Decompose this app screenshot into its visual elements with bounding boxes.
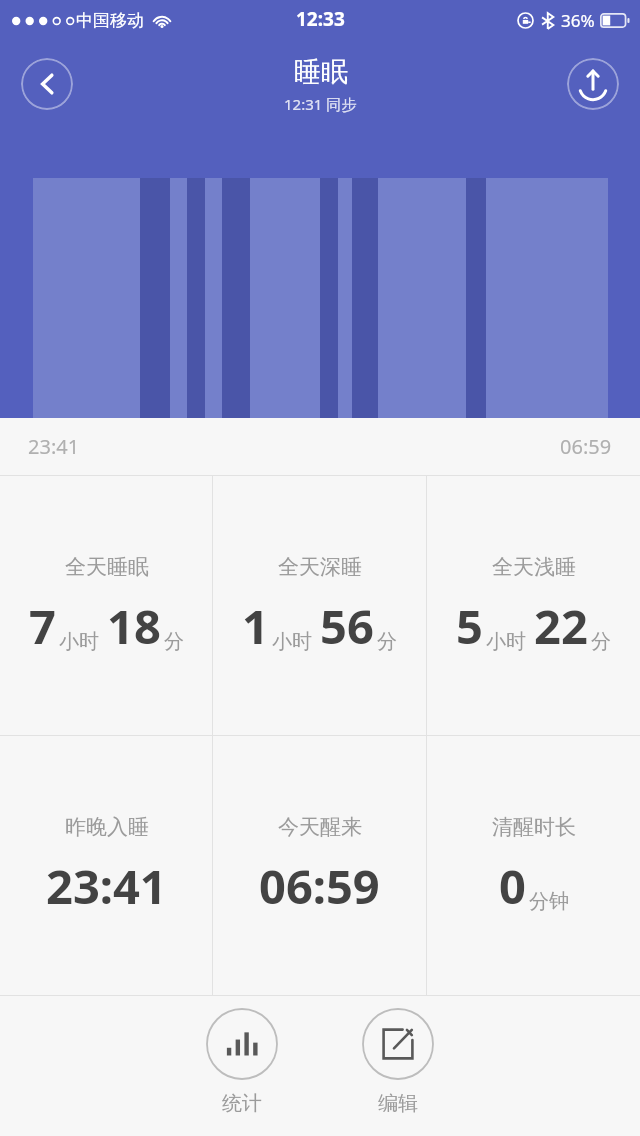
button[interactable]: 昨晚入睡 bbox=[0, 736, 212, 995]
staticText: 36% bbox=[561, 9, 595, 32]
staticText: 分钟 bbox=[529, 889, 569, 914]
staticText: 22 bbox=[534, 594, 588, 658]
staticText: 小时 bbox=[486, 629, 526, 654]
button[interactable]: 全天睡眠 bbox=[0, 476, 212, 735]
staticText: 全天浅睡 bbox=[492, 554, 576, 580]
staticText: 5 bbox=[456, 594, 483, 658]
staticText: 小时 bbox=[59, 629, 99, 654]
staticText: 7 bbox=[29, 594, 56, 658]
button[interactable]: 统计 bbox=[192, 1008, 292, 1116]
button[interactable]: 今天醒来 bbox=[213, 736, 426, 995]
staticText: 分 bbox=[591, 629, 611, 654]
staticText: 1 bbox=[242, 594, 269, 658]
button[interactable]: 全天深睡 bbox=[213, 476, 426, 735]
staticText: 分 bbox=[164, 629, 184, 654]
staticText: 分 bbox=[377, 629, 397, 654]
staticText: 23:41 bbox=[46, 854, 167, 918]
staticText: 今天醒来 bbox=[278, 814, 362, 840]
button[interactable]: Sync bbox=[567, 58, 619, 110]
staticText: 12:31 同步 bbox=[284, 94, 357, 114]
staticText: 12:33 bbox=[296, 6, 345, 32]
staticText: 18 bbox=[107, 594, 161, 658]
button[interactable]: 全天浅睡 bbox=[427, 476, 640, 735]
staticText: 56 bbox=[320, 594, 374, 658]
staticText: 小时 bbox=[272, 629, 312, 654]
staticText: 全天深睡 bbox=[278, 554, 362, 580]
staticText: 06:59 bbox=[560, 433, 612, 460]
staticText: 06:59 bbox=[259, 854, 380, 918]
button[interactable]: 编辑 bbox=[348, 1008, 448, 1116]
staticText: 昨晚入睡 bbox=[65, 814, 149, 840]
staticText: 23:41 bbox=[28, 433, 80, 460]
staticText: 全天睡眠 bbox=[65, 554, 149, 580]
staticText: 编辑 bbox=[378, 1091, 418, 1116]
staticText: 睡眠 bbox=[294, 55, 348, 89]
staticText: 统计 bbox=[222, 1091, 262, 1116]
button[interactable]: Back bbox=[21, 58, 73, 110]
staticText: 0 bbox=[499, 854, 526, 918]
staticText: 清醒时长 bbox=[492, 814, 576, 840]
staticText: 中国移动 bbox=[76, 10, 144, 31]
button[interactable]: 清醒时长 bbox=[427, 736, 640, 995]
